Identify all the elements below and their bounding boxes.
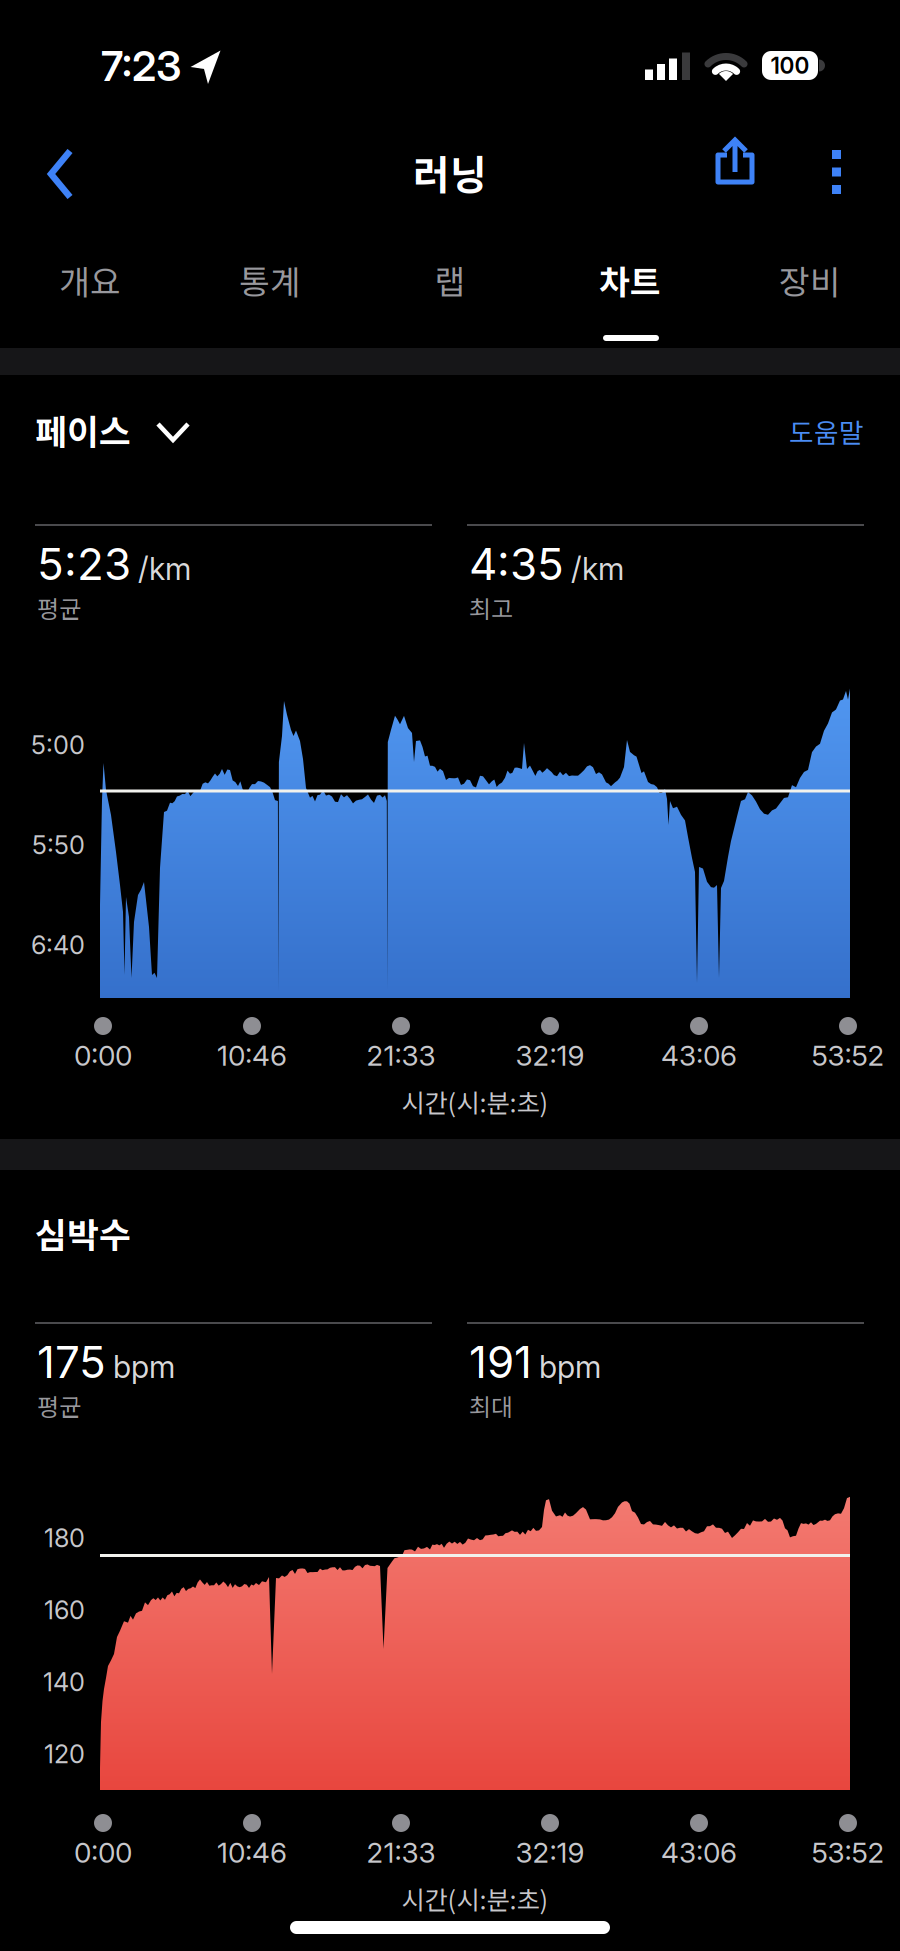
staticText: 심박수	[35, 1208, 131, 1258]
staticText: 10:46	[217, 1836, 287, 1869]
staticText: 최고	[469, 590, 513, 625]
staticText: 랩	[434, 256, 465, 304]
staticText: 32:19	[515, 1836, 584, 1869]
staticText: 도움말	[789, 412, 864, 450]
staticText: /km	[138, 550, 191, 587]
staticText: 7:23	[101, 41, 181, 91]
staticText: 43:06	[661, 1836, 737, 1869]
staticText: 평균	[37, 590, 81, 625]
button[interactable]: 차트	[540, 240, 720, 320]
staticText: 장비	[779, 256, 841, 304]
staticText: 21:33	[366, 1836, 435, 1869]
staticText: 시간(시:분:초)	[401, 1083, 548, 1120]
button[interactable]: More	[802, 142, 872, 202]
staticText: 4:35	[469, 537, 564, 591]
staticText: 러닝	[413, 143, 487, 201]
staticText: 180	[44, 1523, 85, 1553]
staticText: 개요	[59, 256, 121, 304]
staticText: 175	[37, 1335, 106, 1389]
button[interactable]: 개요	[0, 240, 180, 320]
staticText: 6:40	[31, 930, 85, 960]
staticText: 10:46	[217, 1039, 287, 1072]
button[interactable]: Share	[687, 138, 763, 202]
button[interactable]: 장비	[720, 240, 900, 320]
staticText: 0:00	[74, 1836, 132, 1869]
staticText: 100	[770, 52, 809, 79]
staticText: /km	[571, 550, 624, 587]
staticText: 21:33	[366, 1039, 435, 1072]
staticText: 53:52	[811, 1039, 884, 1072]
staticText: 43:06	[661, 1039, 737, 1072]
button[interactable]: 랩	[360, 240, 540, 320]
staticText: 5:50	[32, 830, 85, 860]
staticText: bpm	[113, 1348, 175, 1385]
staticText: 통계	[239, 256, 301, 304]
button[interactable]: Select metric	[150, 415, 196, 449]
button[interactable]: 통계	[180, 240, 360, 320]
staticText: 최대	[469, 1388, 513, 1423]
staticText: bpm	[539, 1348, 601, 1385]
staticText: 5:23	[37, 537, 131, 591]
staticText: 페이스	[35, 405, 131, 455]
staticText: 평균	[37, 1388, 81, 1423]
staticText: 140	[43, 1667, 85, 1697]
staticText: 160	[44, 1595, 85, 1625]
staticText: 5:00	[31, 730, 85, 760]
staticText: 시간(시:분:초)	[401, 1880, 548, 1917]
staticText: 32:19	[515, 1039, 584, 1072]
staticText: 120	[44, 1739, 85, 1769]
staticText: 53:52	[811, 1836, 884, 1869]
staticText: 191	[469, 1335, 532, 1389]
staticText: 차트	[599, 256, 661, 304]
staticText: 0:00	[74, 1039, 132, 1072]
button[interactable]: 도움말	[664, 412, 864, 450]
